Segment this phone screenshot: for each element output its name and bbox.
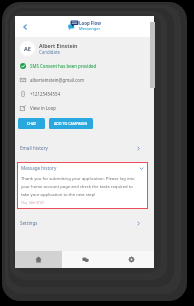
staticText: Albert Einstein bbox=[39, 42, 78, 49]
staticText: Settings bbox=[20, 220, 38, 226]
staticText: +12125454554 bbox=[30, 91, 61, 97]
staticText: Candidate bbox=[39, 49, 61, 55]
staticText: Loop Flow bbox=[79, 20, 101, 26]
staticText: CHAT bbox=[27, 121, 37, 126]
button[interactable]: alberteinstein@gmail.com bbox=[15, 73, 154, 87]
staticText: Messenger bbox=[79, 26, 101, 31]
button[interactable]: Email history bbox=[15, 140, 154, 156]
button[interactable]: ADD TO CAMPAIGN bbox=[49, 118, 93, 129]
staticText: Thu, 14th 07:07 bbox=[21, 201, 45, 205]
button[interactable]: Settings bbox=[108, 251, 154, 268]
staticText: Message history bbox=[21, 165, 57, 171]
staticText: ADD TO CAMPAIGN bbox=[54, 121, 88, 126]
button[interactable]: Messages bbox=[62, 251, 108, 268]
button[interactable]: CHAT bbox=[18, 118, 45, 129]
button[interactable]: +12125454554 bbox=[15, 87, 154, 101]
staticText: View in Loop bbox=[30, 105, 57, 111]
button[interactable]: Message history bbox=[17, 162, 148, 209]
staticText: alberteinstein@gmail.com bbox=[30, 77, 85, 83]
staticText: Thank you for submitting your applicatio… bbox=[21, 176, 135, 198]
button[interactable]: Settings bbox=[15, 215, 154, 231]
button[interactable]: Home bbox=[15, 251, 62, 268]
button[interactable]: Back bbox=[18, 20, 31, 33]
button[interactable]: View in Loop bbox=[15, 101, 154, 115]
staticText: AE bbox=[24, 45, 31, 52]
button[interactable]: SMS Consent has been provided bbox=[15, 59, 154, 73]
staticText: Email history bbox=[20, 145, 48, 151]
staticText: SMS Consent has been provided bbox=[30, 63, 97, 69]
